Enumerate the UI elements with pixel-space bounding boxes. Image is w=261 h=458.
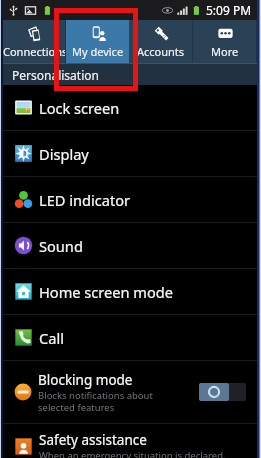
button[interactable]: Display — [3, 131, 257, 176]
button[interactable]: Home screen mode — [3, 269, 257, 314]
button[interactable]: Connections — [3, 20, 66, 64]
button[interactable]: More — [193, 20, 257, 64]
staticText: Blocking mode — [38, 371, 133, 389]
button[interactable]: Blocking mode — [3, 361, 257, 423]
staticText: More — [211, 44, 239, 59]
staticText: When an emergency situation is declared. — [39, 449, 226, 458]
staticText: Lock screen — [39, 98, 120, 118]
staticText: Safety assistance — [39, 431, 147, 449]
button[interactable]: Blocking mode toggle — [199, 383, 246, 401]
button[interactable]: Accounts — [129, 20, 193, 64]
staticText: Accounts — [137, 44, 185, 59]
staticText: LED indicator — [39, 190, 131, 210]
button[interactable]: Call — [3, 315, 257, 360]
button[interactable]: LED indicator — [3, 177, 257, 222]
button[interactable]: Sound — [3, 223, 257, 268]
staticText: Home screen mode — [39, 282, 174, 302]
staticText: My device — [72, 44, 124, 59]
staticText: Blocks notifications about selected feat… — [38, 389, 153, 414]
staticText: 5:09 PM — [206, 2, 252, 18]
staticText: Personalisation — [12, 67, 99, 83]
button[interactable]: Safety assistance — [3, 424, 257, 458]
staticText: Call — [39, 328, 64, 348]
staticText: Sound — [39, 236, 83, 256]
button[interactable]: Lock screen — [3, 85, 257, 130]
button[interactable]: My device — [66, 20, 129, 64]
staticText: Connections — [3, 44, 66, 59]
staticText: Display — [39, 144, 89, 164]
